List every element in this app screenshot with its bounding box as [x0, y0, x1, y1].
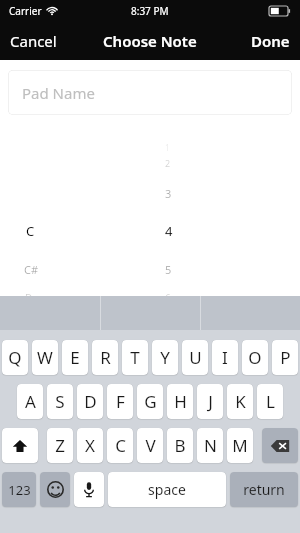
staticText: 2: [165, 157, 171, 169]
staticText: A: [25, 390, 36, 413]
button[interactable]: space: [108, 472, 226, 507]
staticText: 3: [165, 186, 172, 201]
button[interactable]: F: [107, 384, 133, 419]
button[interactable]: Y: [152, 340, 178, 375]
staticText: R: [100, 346, 111, 369]
staticText: O: [248, 346, 262, 369]
staticText: P: [280, 346, 291, 369]
staticText: X: [85, 434, 95, 457]
button[interactable]: Shift: [2, 428, 38, 463]
button[interactable]: Emoji: [40, 472, 70, 507]
button[interactable]: I: [212, 340, 238, 375]
staticText: space: [148, 480, 186, 499]
button[interactable]: K: [227, 384, 253, 419]
staticText: D: [25, 291, 33, 305]
staticText: H: [174, 390, 187, 413]
staticText: Y: [160, 346, 170, 369]
button[interactable]: N: [197, 428, 223, 463]
staticText: T: [130, 346, 140, 369]
staticText: Carrier: [9, 4, 42, 18]
button[interactable]: P: [272, 340, 298, 375]
staticText: C: [115, 434, 126, 457]
staticText: C#: [24, 262, 39, 277]
button[interactable]: E: [62, 340, 88, 375]
staticText: W: [37, 346, 53, 369]
staticText: Z: [55, 434, 65, 457]
staticText: Choose Note: [103, 31, 197, 51]
staticText: D: [84, 390, 97, 413]
button[interactable]: Numbers: [2, 472, 36, 507]
staticText: return: [243, 480, 285, 499]
button[interactable]: J: [197, 384, 223, 419]
button[interactable]: H: [167, 384, 193, 419]
button[interactable]: W: [32, 340, 58, 375]
staticText: I: [222, 346, 228, 369]
staticText: K: [235, 390, 246, 413]
button[interactable]: A: [17, 384, 43, 419]
button[interactable]: G: [137, 384, 163, 419]
staticText: G: [144, 390, 157, 413]
button[interactable]: X: [77, 428, 103, 463]
staticText: U: [189, 346, 202, 369]
button[interactable]: M: [227, 428, 253, 463]
staticText: B: [174, 434, 186, 457]
button[interactable]: return: [230, 472, 298, 507]
button[interactable]: D: [77, 384, 103, 419]
button[interactable]: Z: [47, 428, 73, 463]
button[interactable]: Done: [241, 25, 300, 57]
staticText: F: [116, 390, 125, 413]
staticText: 5: [165, 262, 172, 277]
staticText: 1: [165, 142, 170, 153]
staticText: 8:37 PM: [131, 4, 169, 18]
button[interactable]: S: [47, 384, 73, 419]
staticText: 123: [8, 481, 31, 499]
staticText: S: [55, 390, 65, 413]
staticText: V: [145, 434, 156, 457]
button[interactable]: U: [182, 340, 208, 375]
staticText: 4: [165, 222, 173, 240]
staticText: M: [232, 434, 248, 457]
staticText: 6: [165, 291, 171, 305]
button[interactable]: Backspace: [262, 428, 298, 463]
button[interactable]: Q: [2, 340, 28, 375]
staticText: Q: [8, 346, 22, 369]
staticText: Pad Name: [22, 83, 95, 103]
button[interactable]: B: [167, 428, 193, 463]
staticText: E: [70, 346, 80, 369]
staticText: N: [204, 434, 217, 457]
staticText: Done: [251, 31, 290, 51]
button[interactable]: T: [122, 340, 148, 375]
button[interactable]: Dictate: [74, 472, 104, 507]
button[interactable]: V: [137, 428, 163, 463]
staticText: L: [266, 390, 275, 413]
staticText: C: [26, 222, 35, 240]
button[interactable]: Cancel: [0, 25, 67, 57]
button[interactable]: Pad Name: [8, 70, 292, 115]
button[interactable]: L: [257, 384, 283, 419]
staticText: J: [208, 390, 213, 413]
staticText: Cancel: [10, 31, 57, 51]
button[interactable]: R: [92, 340, 118, 375]
button[interactable]: C: [107, 428, 133, 463]
button[interactable]: O: [242, 340, 268, 375]
